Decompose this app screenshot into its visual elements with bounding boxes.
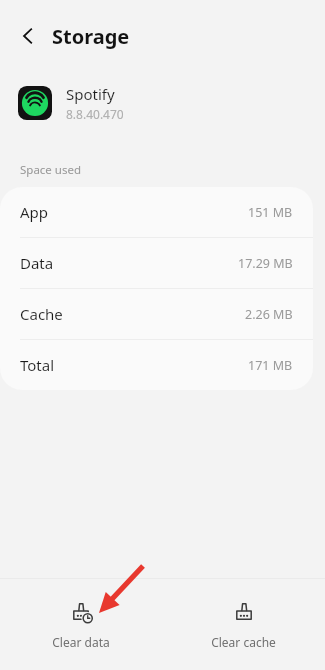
staticText: Space used: [20, 162, 82, 178]
button[interactable]: Back: [10, 18, 46, 54]
staticText: Cache: [20, 304, 63, 324]
button[interactable]: Clear cache: [162, 579, 325, 670]
staticText: 151 MB: [248, 204, 293, 221]
button[interactable]: App: [0, 187, 313, 237]
button[interactable]: Total: [0, 340, 313, 390]
button[interactable]: Clear data: [0, 579, 162, 670]
staticText: Total: [20, 355, 55, 375]
staticText: App: [20, 202, 49, 222]
staticText: Clear cache: [211, 634, 276, 650]
staticText: 171 MB: [248, 357, 293, 374]
staticText: 8.8.40.470: [66, 106, 124, 122]
staticText: 17.29 MB: [238, 255, 293, 272]
staticText: Spotify: [66, 84, 115, 104]
button[interactable]: Data: [0, 238, 313, 288]
button[interactable]: Cache: [0, 289, 313, 339]
staticText: Data: [20, 253, 54, 273]
staticText: Clear data: [52, 634, 110, 650]
staticText: 2.26 MB: [245, 306, 293, 323]
staticText: Storage: [52, 23, 130, 50]
